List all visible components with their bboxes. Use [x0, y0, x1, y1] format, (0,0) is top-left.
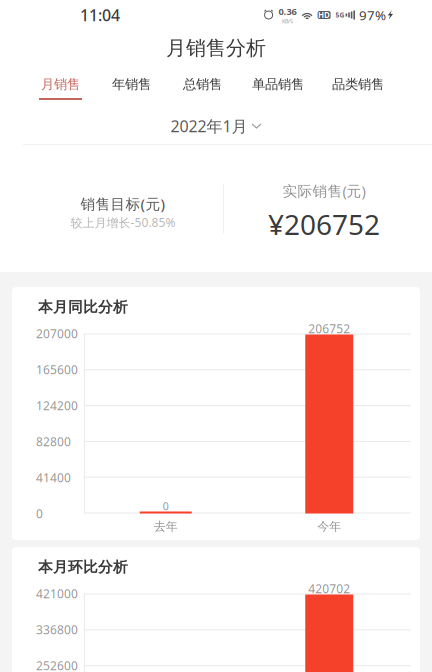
staticText: 去年: [154, 519, 178, 534]
staticText: 252600: [36, 657, 78, 672]
button[interactable]: 单品销售: [252, 66, 304, 108]
staticText: 82800: [36, 433, 71, 449]
staticText: 5G: [336, 11, 345, 19]
staticText: 41400: [36, 469, 71, 485]
staticText: 206752: [308, 320, 350, 336]
staticText: 本月同比分析: [38, 298, 128, 316]
staticText: 0: [163, 499, 169, 513]
staticText: 420702: [308, 580, 350, 596]
staticText: 月销售分析: [166, 36, 266, 60]
staticText: KB/S: [282, 18, 293, 25]
button[interactable]: 总销售: [181, 66, 224, 108]
staticText: 11:04: [80, 4, 120, 26]
staticText: 165600: [36, 361, 78, 377]
staticText: 124200: [36, 397, 78, 413]
staticText: 0.36: [279, 5, 297, 18]
staticText: 2022年1月: [170, 115, 247, 137]
staticText: 品类销售: [332, 76, 384, 92]
staticText: 今年: [317, 519, 341, 534]
staticText: ¥206752: [268, 205, 380, 243]
staticText: 单品销售: [252, 76, 304, 92]
staticText: 年销售: [112, 76, 151, 92]
button[interactable]: 2022年1月: [0, 108, 432, 144]
staticText: 0: [36, 505, 43, 521]
button[interactable]: 品类销售: [332, 66, 384, 108]
button[interactable]: 月销售: [39, 66, 82, 108]
staticText: 实际销售(元): [282, 181, 365, 200]
staticText: 较上月增长-50.85%: [70, 214, 175, 230]
staticText: 本月环比分析: [38, 558, 128, 576]
staticText: 336800: [36, 621, 78, 637]
staticText: HD: [318, 10, 330, 20]
staticText: 207000: [36, 325, 78, 341]
button[interactable]: 年销售: [110, 66, 153, 108]
staticText: 月销售: [41, 76, 80, 92]
staticText: 总销售: [183, 76, 222, 92]
staticText: 421000: [36, 585, 78, 601]
staticText: 销售目标(元): [80, 194, 165, 213]
staticText: 97%: [359, 6, 386, 24]
